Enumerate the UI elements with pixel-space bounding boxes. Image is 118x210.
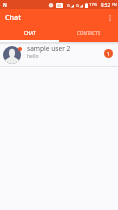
button[interactable]: sample user 2 xyxy=(0,42,118,67)
staticText: G xyxy=(76,3,79,8)
staticText: Chat xyxy=(5,12,21,22)
button[interactable]: CHAT xyxy=(0,27,59,42)
staticText: 8:52 xyxy=(101,2,111,8)
staticText: hello xyxy=(27,53,39,60)
staticText: 1 xyxy=(107,51,110,57)
staticText: 17% xyxy=(89,2,98,8)
button[interactable]: More options xyxy=(102,10,118,26)
staticText: sample user 2 xyxy=(27,44,71,53)
staticText: 4G xyxy=(57,4,62,8)
staticText: CHAT xyxy=(24,30,36,36)
staticText: N xyxy=(3,2,7,8)
staticText: G xyxy=(67,3,70,8)
button[interactable]: CONTACTS xyxy=(59,27,118,42)
staticText: PM xyxy=(112,3,117,7)
staticText: CONTACTS xyxy=(77,30,101,36)
